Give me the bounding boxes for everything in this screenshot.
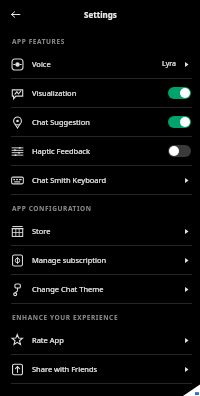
button[interactable]: Manage subscription <box>0 246 200 274</box>
button[interactable]: Store <box>0 217 200 245</box>
button[interactable]: Visualization <box>0 79 200 107</box>
button[interactable] <box>168 87 191 99</box>
button[interactable] <box>168 116 191 128</box>
staticText: ENHANCE YOUR EXPERIENCE <box>12 313 119 322</box>
staticText: Chat Suggestion <box>32 117 168 127</box>
staticText: Voice <box>32 59 162 69</box>
button[interactable]: Back <box>6 5 24 23</box>
button[interactable]: Change Chat Theme <box>0 275 200 303</box>
button[interactable]: Chat Smith Keyboard <box>0 166 200 194</box>
staticText: Store <box>32 226 182 236</box>
button[interactable] <box>168 145 191 157</box>
staticText: Visualization <box>32 88 168 98</box>
staticText: APP FEATURES <box>12 37 65 46</box>
button[interactable]: Share with Friends <box>0 355 200 383</box>
staticText: Lyra <box>162 59 176 69</box>
staticText: Manage subscription <box>32 255 182 265</box>
button[interactable]: Chat Suggestion <box>0 108 200 136</box>
staticText: Haptic Feedback <box>32 146 168 156</box>
staticText: Settings <box>84 9 117 20</box>
staticText: Change Chat Theme <box>32 284 182 294</box>
staticText: Chat Smith Keyboard <box>32 175 182 185</box>
staticText: Share with Friends <box>32 364 182 374</box>
button[interactable]: Rate App <box>0 326 200 354</box>
button[interactable]: Voice <box>0 50 200 78</box>
button[interactable]: Haptic Feedback <box>0 137 200 165</box>
staticText: APP CONFIGURATION <box>12 204 92 213</box>
staticText: Rate App <box>32 335 182 345</box>
